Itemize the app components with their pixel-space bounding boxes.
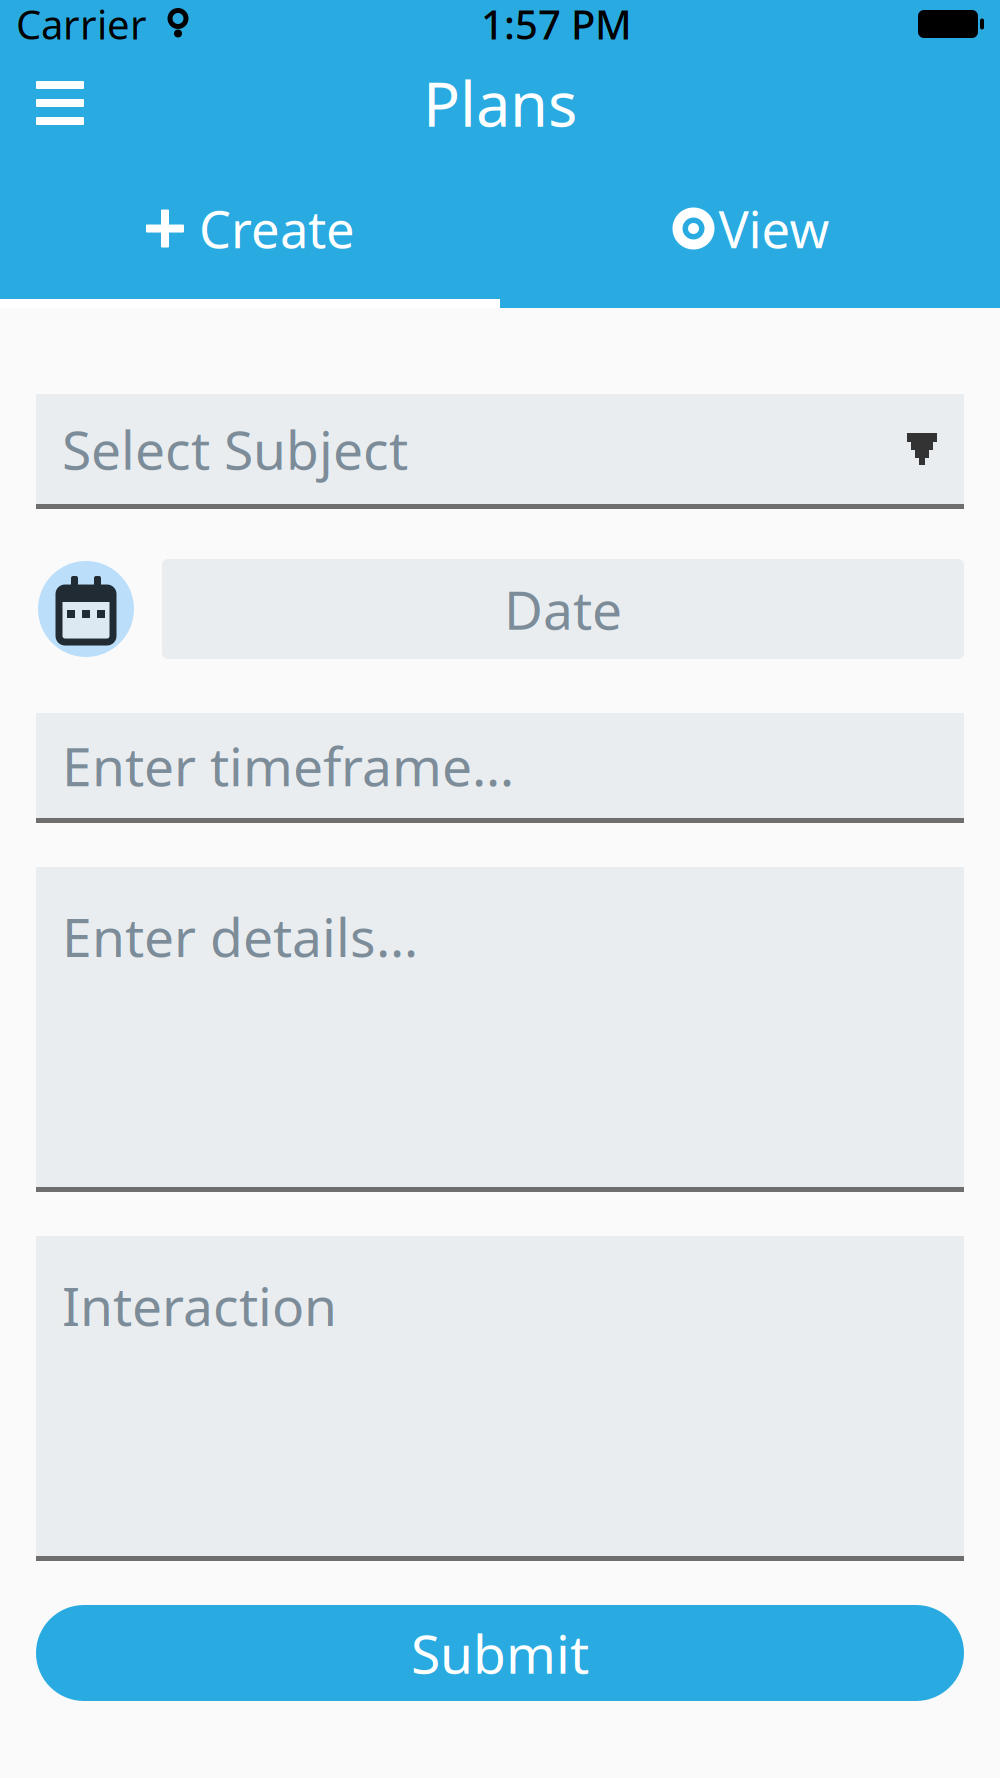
staticText: Date [504, 574, 622, 644]
staticText: Carrier [16, 0, 147, 50]
staticText: Interaction [62, 1270, 337, 1341]
button[interactable]: Submit [36, 1605, 964, 1701]
staticText: Enter timeframe… [62, 730, 514, 801]
staticText: 1:57 PM [481, 0, 632, 50]
button[interactable]: View [500, 158, 1000, 308]
staticText: Select Subject [62, 414, 408, 484]
button[interactable]: Select Subject [36, 394, 964, 509]
button[interactable]: Menu [14, 57, 106, 149]
button[interactable]: Enter timeframe… [36, 713, 964, 823]
staticText: Create [199, 195, 355, 262]
staticText: Submit [411, 1618, 589, 1688]
button[interactable]: Enter details… [36, 867, 964, 1192]
staticText: Enter details… [62, 901, 418, 972]
button[interactable]: Date [162, 559, 964, 659]
staticText: View [718, 195, 829, 262]
button[interactable]: Pick date [36, 559, 136, 659]
button[interactable]: Create [0, 158, 500, 308]
button[interactable]: Interaction [36, 1236, 964, 1561]
staticText: Plans [423, 62, 577, 144]
